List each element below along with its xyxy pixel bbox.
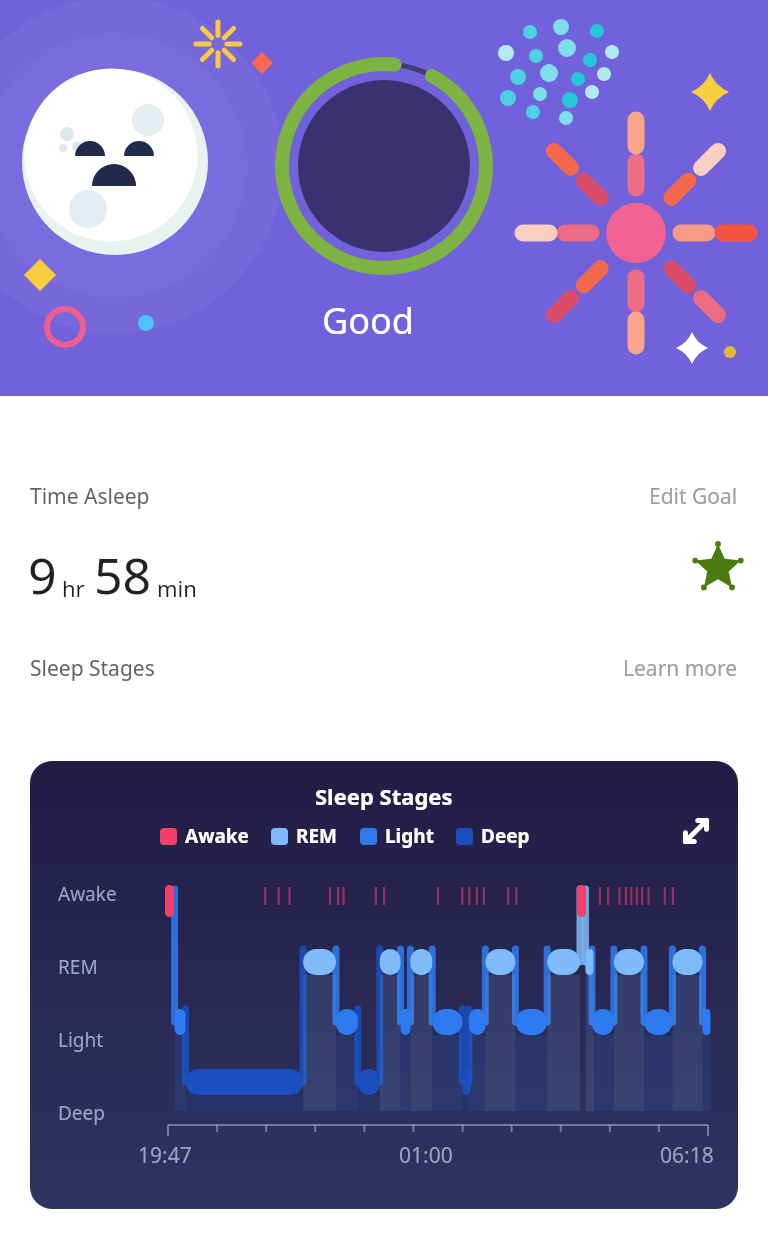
button[interactable]: Sleep Stages bbox=[30, 761, 738, 1209]
button[interactable]: Awake bbox=[160, 823, 249, 849]
staticText: Awake bbox=[185, 823, 249, 849]
button[interactable]: REM bbox=[271, 823, 338, 849]
button[interactable]: Edit Goal bbox=[649, 482, 738, 511]
staticText: Deep bbox=[58, 1100, 105, 1126]
button[interactable]: Light bbox=[360, 823, 434, 849]
staticText: 58 bbox=[94, 541, 152, 609]
staticText: Edit Goal bbox=[649, 482, 738, 511]
button[interactable]: Deep bbox=[456, 823, 530, 849]
staticText: hr bbox=[62, 573, 85, 603]
staticText: 06:18 bbox=[660, 1141, 714, 1170]
button[interactable]: Expand chart bbox=[674, 809, 718, 853]
staticText: Light bbox=[58, 1027, 104, 1053]
button[interactable]: Learn more bbox=[623, 654, 738, 683]
staticText: 9 bbox=[28, 541, 57, 609]
staticText: Awake bbox=[58, 881, 117, 907]
staticText: Good bbox=[322, 296, 414, 345]
staticText: Time Asleep bbox=[30, 482, 150, 511]
staticText: Sleep Stages bbox=[30, 654, 155, 683]
staticText: REM bbox=[296, 823, 338, 849]
staticText: Learn more bbox=[623, 654, 738, 683]
staticText: 19:47 bbox=[138, 1141, 192, 1170]
staticText: min bbox=[157, 573, 197, 603]
staticText: REM bbox=[58, 954, 98, 980]
staticText: 01:00 bbox=[399, 1141, 453, 1170]
staticText: Light bbox=[385, 823, 434, 849]
staticText: Deep bbox=[481, 823, 530, 849]
staticText: Sleep Stages bbox=[315, 781, 453, 811]
